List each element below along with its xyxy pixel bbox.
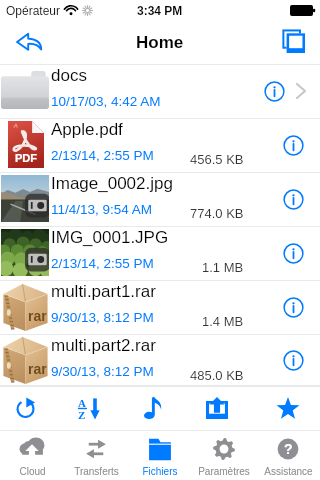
button[interactable]: Paramètres xyxy=(192,430,256,480)
button[interactable]: PDF xyxy=(0,119,320,173)
staticText: rar xyxy=(28,308,47,324)
button[interactable]: Info IMG_0001.JPG xyxy=(275,235,311,271)
staticText: Opérateur xyxy=(6,4,61,17)
staticText: Image_0002.jpg xyxy=(51,174,173,193)
button[interactable]: Sort xyxy=(67,386,111,430)
staticText: 2/13/14, 2:55 PM xyxy=(51,256,154,271)
staticText: Paramètres xyxy=(198,466,250,477)
button[interactable]: Info docs xyxy=(256,73,292,109)
button[interactable]: Refresh xyxy=(3,386,47,430)
button[interactable]: Back xyxy=(7,20,51,64)
button[interactable]: Image_0002.jpg xyxy=(0,173,320,227)
staticText: Assistance xyxy=(264,466,313,477)
button[interactable]: Music xyxy=(131,386,175,430)
staticText: 774.0 KB xyxy=(190,206,244,221)
staticText: Cloud xyxy=(19,466,46,477)
button[interactable]: Tabs xyxy=(271,20,315,64)
staticText: multi.part2.rar xyxy=(51,336,156,355)
button[interactable]: Share xyxy=(195,386,239,430)
button[interactable]: Info multi.part1.rar xyxy=(275,289,311,325)
button[interactable]: Info Apple.pdf xyxy=(275,127,311,163)
button[interactable]: rar xyxy=(0,335,320,386)
staticText: 485.0 KB xyxy=(190,368,244,383)
button[interactable]: IMG_0001.JPG xyxy=(0,227,320,281)
staticText: 10/17/03, 4:42 AM xyxy=(51,94,161,109)
button[interactable]: Transferts xyxy=(64,430,128,480)
button[interactable]: Info Image_0002.jpg xyxy=(275,181,311,217)
staticText: 456.5 KB xyxy=(190,152,244,167)
staticText: Home xyxy=(136,33,184,52)
staticText: 3:34 PM xyxy=(137,4,183,17)
staticText: Transferts xyxy=(74,466,119,477)
staticText: 9/30/13, 8:12 PM xyxy=(51,364,154,379)
staticText: docs xyxy=(51,66,87,85)
button[interactable]: ? xyxy=(256,430,320,480)
staticText: 2/13/14, 2:55 PM xyxy=(51,148,154,163)
button[interactable]: rar xyxy=(0,281,320,335)
button[interactable]: Cloud xyxy=(0,430,64,480)
staticText: multi.part1.rar xyxy=(51,282,156,301)
button[interactable]: Info multi.part2.rar xyxy=(275,342,311,378)
staticText: rar xyxy=(28,361,47,377)
staticText: PDF xyxy=(15,152,37,164)
staticText: A xyxy=(78,397,86,409)
staticText: IMG_0001.JPG xyxy=(51,228,169,247)
staticText: Z xyxy=(78,409,86,420)
staticText: 1.1 MB xyxy=(202,260,244,275)
button[interactable]: Fichiers xyxy=(128,430,192,480)
staticText: 1.4 MB xyxy=(202,314,244,329)
staticText: Apple.pdf xyxy=(51,120,123,139)
staticText: 9/30/13, 8:12 PM xyxy=(51,310,154,325)
staticText: Fichiers xyxy=(142,466,178,477)
button[interactable]: docs xyxy=(0,65,320,119)
staticText: ? xyxy=(284,441,293,457)
staticText: 11/4/13, 9:54 AM xyxy=(51,202,153,217)
button[interactable]: Favorites xyxy=(266,386,310,430)
